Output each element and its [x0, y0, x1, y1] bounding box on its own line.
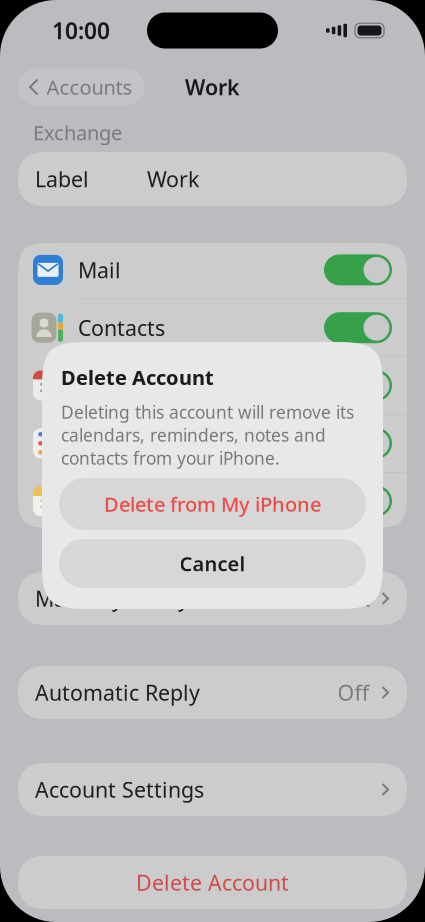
button[interactable]: Reminders	[18, 415, 407, 472]
button[interactable]: Account Settings	[18, 763, 407, 816]
button[interactable]: Accounts	[18, 68, 144, 105]
staticText: Mail	[78, 256, 121, 284]
button[interactable]: Delete Account	[18, 856, 407, 909]
button[interactable]: Contacts	[18, 299, 407, 356]
staticText: 1 Week	[297, 584, 369, 613]
staticText: 10:00	[52, 15, 110, 45]
staticText: Reminders	[78, 429, 186, 457]
staticText: Work	[185, 73, 240, 101]
staticText: Cancel	[179, 550, 245, 577]
staticText: Delete Account	[61, 364, 214, 391]
staticText: Accounts	[46, 74, 132, 100]
button[interactable]: Delete from My iPhone	[59, 478, 366, 530]
staticText: Calendars	[78, 371, 178, 400]
staticText: Off	[337, 678, 369, 707]
button[interactable]: Mail	[18, 241, 407, 298]
staticText: Account Settings	[35, 775, 204, 804]
button[interactable]: Mail Days to Sync	[18, 572, 407, 625]
staticText: Mail Days to Sync	[35, 584, 212, 613]
staticText: Notes	[78, 487, 137, 515]
staticText: Delete from My iPhone	[104, 491, 321, 517]
staticText: Automatic Reply	[35, 678, 200, 707]
button[interactable]: Label	[18, 152, 407, 206]
button[interactable]: Automatic Reply	[18, 666, 407, 719]
staticText: Contacts	[78, 313, 165, 342]
button[interactable]: Cancel	[59, 539, 366, 588]
staticText: Work	[147, 165, 199, 193]
staticText: Label	[35, 165, 89, 193]
button[interactable]: Notes	[18, 473, 407, 530]
staticText: Deleting this account will remove its ca…	[61, 401, 354, 470]
staticText: Delete Account	[136, 868, 289, 897]
staticText: Exchange	[33, 119, 122, 146]
button[interactable]: Calendars	[18, 357, 407, 414]
